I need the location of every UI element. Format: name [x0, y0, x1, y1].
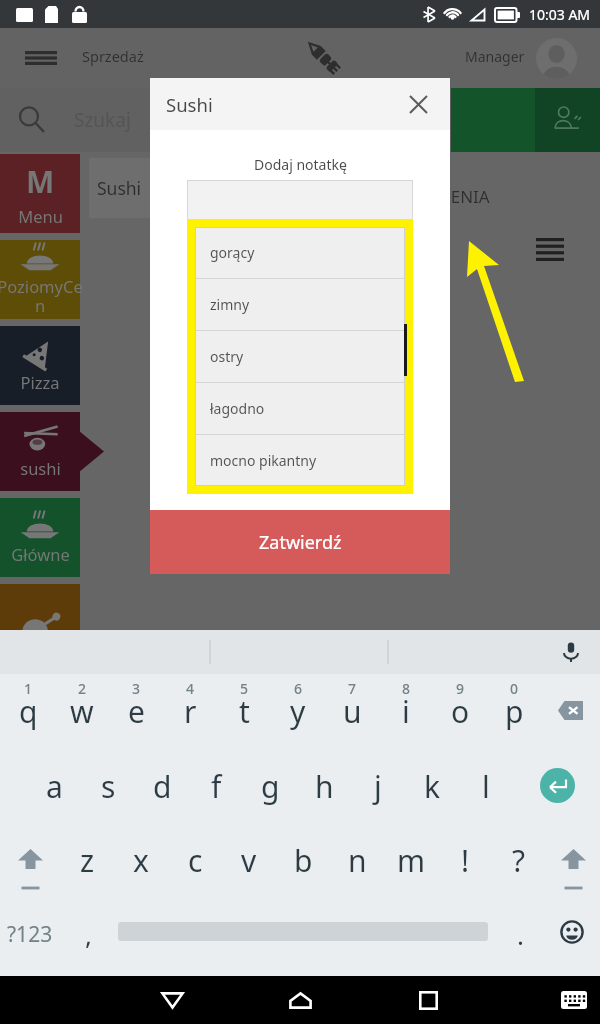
staticText: t [239, 691, 250, 732]
staticText: x [133, 840, 149, 881]
staticText: M [26, 161, 55, 202]
staticText: a [46, 766, 63, 807]
staticText: gorący [210, 243, 255, 262]
button[interactable]: s [81, 764, 135, 808]
button[interactable]: a [27, 764, 81, 808]
staticText: . [517, 917, 524, 952]
staticText: h [315, 766, 334, 807]
staticText: j [374, 766, 382, 807]
button[interactable]: łagodno [195, 383, 405, 434]
button[interactable] [187, 180, 413, 220]
button[interactable]: Close [395, 78, 441, 130]
button[interactable]: Voice input [555, 636, 587, 668]
staticText: c [188, 840, 203, 881]
staticText: w [70, 691, 94, 732]
button[interactable]: Pizza [0, 326, 80, 405]
button[interactable]: 5 [217, 674, 271, 740]
button[interactable]: PoziomyCe n [0, 240, 80, 319]
button[interactable]: mocno pikantny [195, 435, 405, 486]
staticText: z [80, 840, 95, 881]
button[interactable]: x [114, 838, 168, 882]
button[interactable]: g [243, 764, 297, 808]
button[interactable]: Waiter [535, 88, 600, 152]
button[interactable]: Backspace [548, 692, 592, 728]
staticText: Zatwierdź [259, 530, 342, 555]
staticText: k [424, 766, 441, 807]
staticText: mocno pikantny [210, 451, 317, 470]
staticText: i [402, 691, 410, 732]
staticText: 3 [132, 679, 141, 698]
button[interactable]: , [68, 912, 108, 956]
button[interactable]: Shift [551, 849, 595, 897]
button[interactable]: Order list [528, 227, 572, 271]
staticText: p [505, 691, 524, 732]
staticText: u [343, 691, 362, 732]
staticText: Główne [11, 543, 70, 565]
button[interactable]: ! [438, 838, 492, 882]
button[interactable]: Back [150, 976, 194, 1024]
button[interactable]: Szukaj [0, 88, 451, 152]
staticText: sushi [20, 457, 61, 479]
button[interactable]: f [189, 764, 243, 808]
button[interactable]: l [459, 764, 513, 808]
staticText: v [241, 840, 257, 881]
button[interactable]: ?123 [2, 912, 58, 956]
staticText: 0 [510, 679, 519, 698]
staticText: o [451, 691, 470, 732]
button[interactable]: d [135, 764, 189, 808]
button[interactable]: 3 [109, 674, 163, 740]
staticText: łagodno [210, 399, 265, 418]
button[interactable]: . [500, 912, 540, 956]
button[interactable]: m [384, 838, 438, 882]
button[interactable]: v [222, 838, 276, 882]
button[interactable]: Switch keyboard [552, 976, 596, 1024]
staticText: 1 [24, 679, 33, 698]
button[interactable]: Emoji [557, 917, 587, 947]
button[interactable]: M [0, 154, 80, 233]
staticText: ? [512, 840, 526, 881]
button[interactable]: Enter [540, 768, 575, 803]
button[interactable] [0, 584, 80, 663]
button[interactable]: zimny [195, 279, 405, 330]
button[interactable]: Shift [8, 849, 52, 897]
staticText: ZAMÓWIENIA [380, 185, 490, 208]
button[interactable]: 8 [379, 674, 433, 740]
button[interactable]: b [276, 838, 330, 882]
staticText: 8 [402, 679, 411, 698]
button[interactable]: 4 [163, 674, 217, 740]
staticText: l [482, 766, 490, 807]
button[interactable]: Sushi [89, 158, 150, 218]
button[interactable]: j [351, 764, 405, 808]
button[interactable]: gorący [195, 227, 405, 278]
staticText: ?123 [7, 920, 53, 949]
button[interactable]: 2 [55, 674, 109, 740]
button[interactable]: Open navigation menu [0, 28, 82, 88]
staticText: 9 [456, 679, 465, 698]
button[interactable]: sushi [0, 412, 80, 491]
staticText: 6 [294, 679, 303, 698]
button[interactable]: h [297, 764, 351, 808]
button[interactable]: Home [278, 976, 322, 1024]
button[interactable]: Zatwierdź [150, 510, 450, 574]
staticText: Pizza [20, 371, 60, 393]
button[interactable]: ? [492, 838, 546, 882]
button[interactable]: 9 [433, 674, 487, 740]
button[interactable]: ostry [195, 331, 405, 382]
button[interactable]: c [168, 838, 222, 882]
button[interactable]: 6 [271, 674, 325, 740]
button[interactable]: Manager [465, 28, 600, 88]
staticText: d [153, 766, 172, 807]
button[interactable]: 7 [325, 674, 379, 740]
button[interactable]: k [405, 764, 459, 808]
button[interactable]: 0 [487, 674, 541, 740]
button[interactable]: Recents [406, 976, 450, 1024]
button[interactable]: z [60, 838, 114, 882]
staticText: y [290, 691, 306, 732]
staticText: , [85, 917, 92, 952]
staticText: r [184, 691, 197, 732]
button[interactable]: n [330, 838, 384, 882]
button[interactable]: 1 [1, 674, 55, 740]
button[interactable]: Główne [0, 498, 80, 577]
